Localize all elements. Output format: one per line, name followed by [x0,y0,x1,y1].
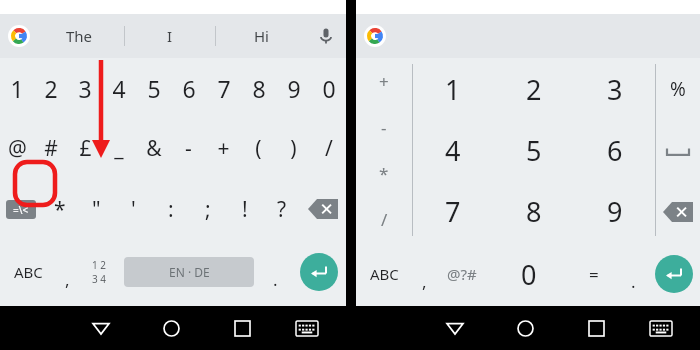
button[interactable]: . [618,242,648,306]
button[interactable]: The [34,14,124,58]
staticText: : [168,195,174,224]
button[interactable]: Recent apps [207,306,278,350]
staticText: 3 4 [92,272,107,286]
button[interactable]: =\< [0,178,41,240]
button[interactable]: ; [189,178,226,240]
staticText: 9 [287,73,301,104]
button[interactable]: 9 [276,58,311,118]
button[interactable]: / [356,196,412,242]
button[interactable]: 1 [0,58,34,118]
staticText: The [66,26,93,46]
button[interactable]: 1 [413,58,493,120]
button[interactable]: 7 [206,58,241,118]
staticText: 4 [112,73,126,104]
button[interactable]: Back [419,306,490,350]
button[interactable]: 6 [574,120,655,181]
button[interactable]: # [34,118,68,178]
staticText: - [185,134,192,163]
button[interactable]: 4 [413,120,493,181]
staticText: @?# [447,264,477,284]
button[interactable]: 2 [34,58,68,118]
button[interactable]: 3 [68,58,102,118]
button[interactable]: _ [102,118,136,178]
button[interactable]: ABC [356,242,412,306]
button[interactable]: % [656,58,700,120]
staticText: 6 [607,132,623,169]
button[interactable]: Enter [292,240,346,304]
button[interactable]: * [356,150,412,196]
button[interactable]: Voice input [306,14,346,58]
button[interactable]: = [570,242,618,306]
staticText: 1 [445,71,461,108]
staticText: 4 [445,132,461,169]
button[interactable]: Backspace [300,178,346,240]
staticText: * [379,162,389,185]
button[interactable]: Switch keyboard [278,306,335,350]
button[interactable]: I [125,14,215,58]
button[interactable]: . [258,240,292,304]
staticText: Hi [254,26,269,46]
button[interactable]: ? [263,178,300,240]
staticText: ABC [370,264,399,284]
button[interactable]: Switch keyboard [632,306,689,350]
staticText: ; [205,195,211,224]
button[interactable]: 2 [493,58,574,120]
button[interactable]: 8 [493,181,574,242]
button[interactable]: 5 [136,58,171,118]
staticText: + [217,134,230,163]
button[interactable]: ( [241,118,276,178]
button[interactable]: ! [226,178,263,240]
button[interactable]: Recent apps [561,306,632,350]
button[interactable]: : [152,178,189,240]
staticText: EN · DE [169,264,210,280]
button[interactable]: 5 [493,120,574,181]
button[interactable]: " [78,178,115,240]
button[interactable]: ) [276,118,311,178]
staticText: 2 [44,73,58,104]
button[interactable]: 4 [102,58,136,118]
button[interactable]: Space [656,120,700,181]
button[interactable]: Home [136,306,207,350]
button[interactable]: - [171,118,206,178]
staticText: . [631,270,636,293]
staticText: / [381,208,388,231]
button[interactable]: , [56,240,78,304]
button[interactable]: Hi [216,14,306,58]
button[interactable]: Google [4,21,34,51]
button[interactable]: + [356,58,412,104]
staticText: 0 [521,256,537,293]
staticText: 2 [526,71,542,108]
staticText: 3 [78,73,92,104]
button[interactable]: + [206,118,241,178]
button[interactable]: Google [360,21,390,51]
staticText: 7 [217,73,231,104]
button[interactable]: 9 [574,181,655,242]
button[interactable]: Home [490,306,561,350]
button[interactable]: & [136,118,171,178]
button[interactable]: 1 2 [78,240,120,304]
button[interactable]: EN · DE [124,257,254,287]
button[interactable]: 3 [574,58,655,120]
button[interactable]: 0 [488,242,570,306]
button[interactable]: @ [0,118,34,178]
button[interactable]: ' [115,178,152,240]
button[interactable]: £ [68,118,102,178]
staticText: 1 2 [92,258,107,272]
staticText: , [422,270,427,293]
button[interactable]: 0 [311,58,346,118]
button[interactable]: Enter [648,242,700,306]
button[interactable]: ABC [0,240,56,304]
button[interactable]: Back [65,306,136,350]
button[interactable]: 7 [413,181,493,242]
staticText: " [92,195,101,224]
staticText: =\< [13,203,29,217]
button[interactable]: * [41,178,78,240]
button[interactable]: 6 [171,58,206,118]
button[interactable]: @?# [436,242,488,306]
button[interactable]: 8 [241,58,276,118]
button[interactable]: Backspace [656,181,700,242]
button[interactable]: - [356,104,412,150]
staticText: 1 [10,73,24,104]
button[interactable]: , [412,242,436,306]
button[interactable]: / [311,118,346,178]
